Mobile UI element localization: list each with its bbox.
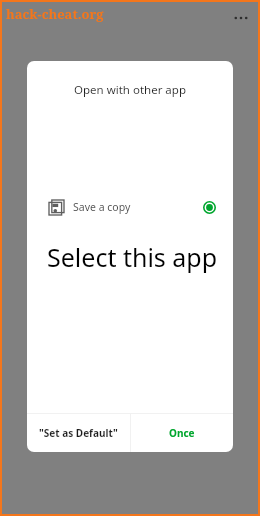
button[interactable]: Select this app	[27, 238, 233, 276]
button[interactable]: Once	[131, 414, 233, 452]
button[interactable]: "Set as Default"	[27, 414, 130, 452]
staticText: Select this app	[47, 240, 218, 274]
button[interactable]: Save a copy, selected	[201, 199, 217, 215]
staticText: "Set as Default"	[39, 426, 118, 440]
button[interactable]: More options	[229, 6, 253, 30]
staticText: Save a copy	[73, 200, 131, 214]
button[interactable]: Save a copy	[27, 190, 233, 224]
staticText: hack-cheat.org	[6, 5, 104, 23]
staticText: Once	[169, 426, 195, 440]
staticText: Open with other app	[27, 82, 233, 98]
